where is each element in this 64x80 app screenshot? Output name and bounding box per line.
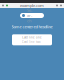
staticText: Search (27, 7, 32, 23)
staticText: Card line two (22, 40, 41, 44)
staticText: Card line one (22, 36, 42, 39)
staticText: example.com (20, 3, 44, 8)
staticText: Some centered headline (11, 24, 52, 29)
